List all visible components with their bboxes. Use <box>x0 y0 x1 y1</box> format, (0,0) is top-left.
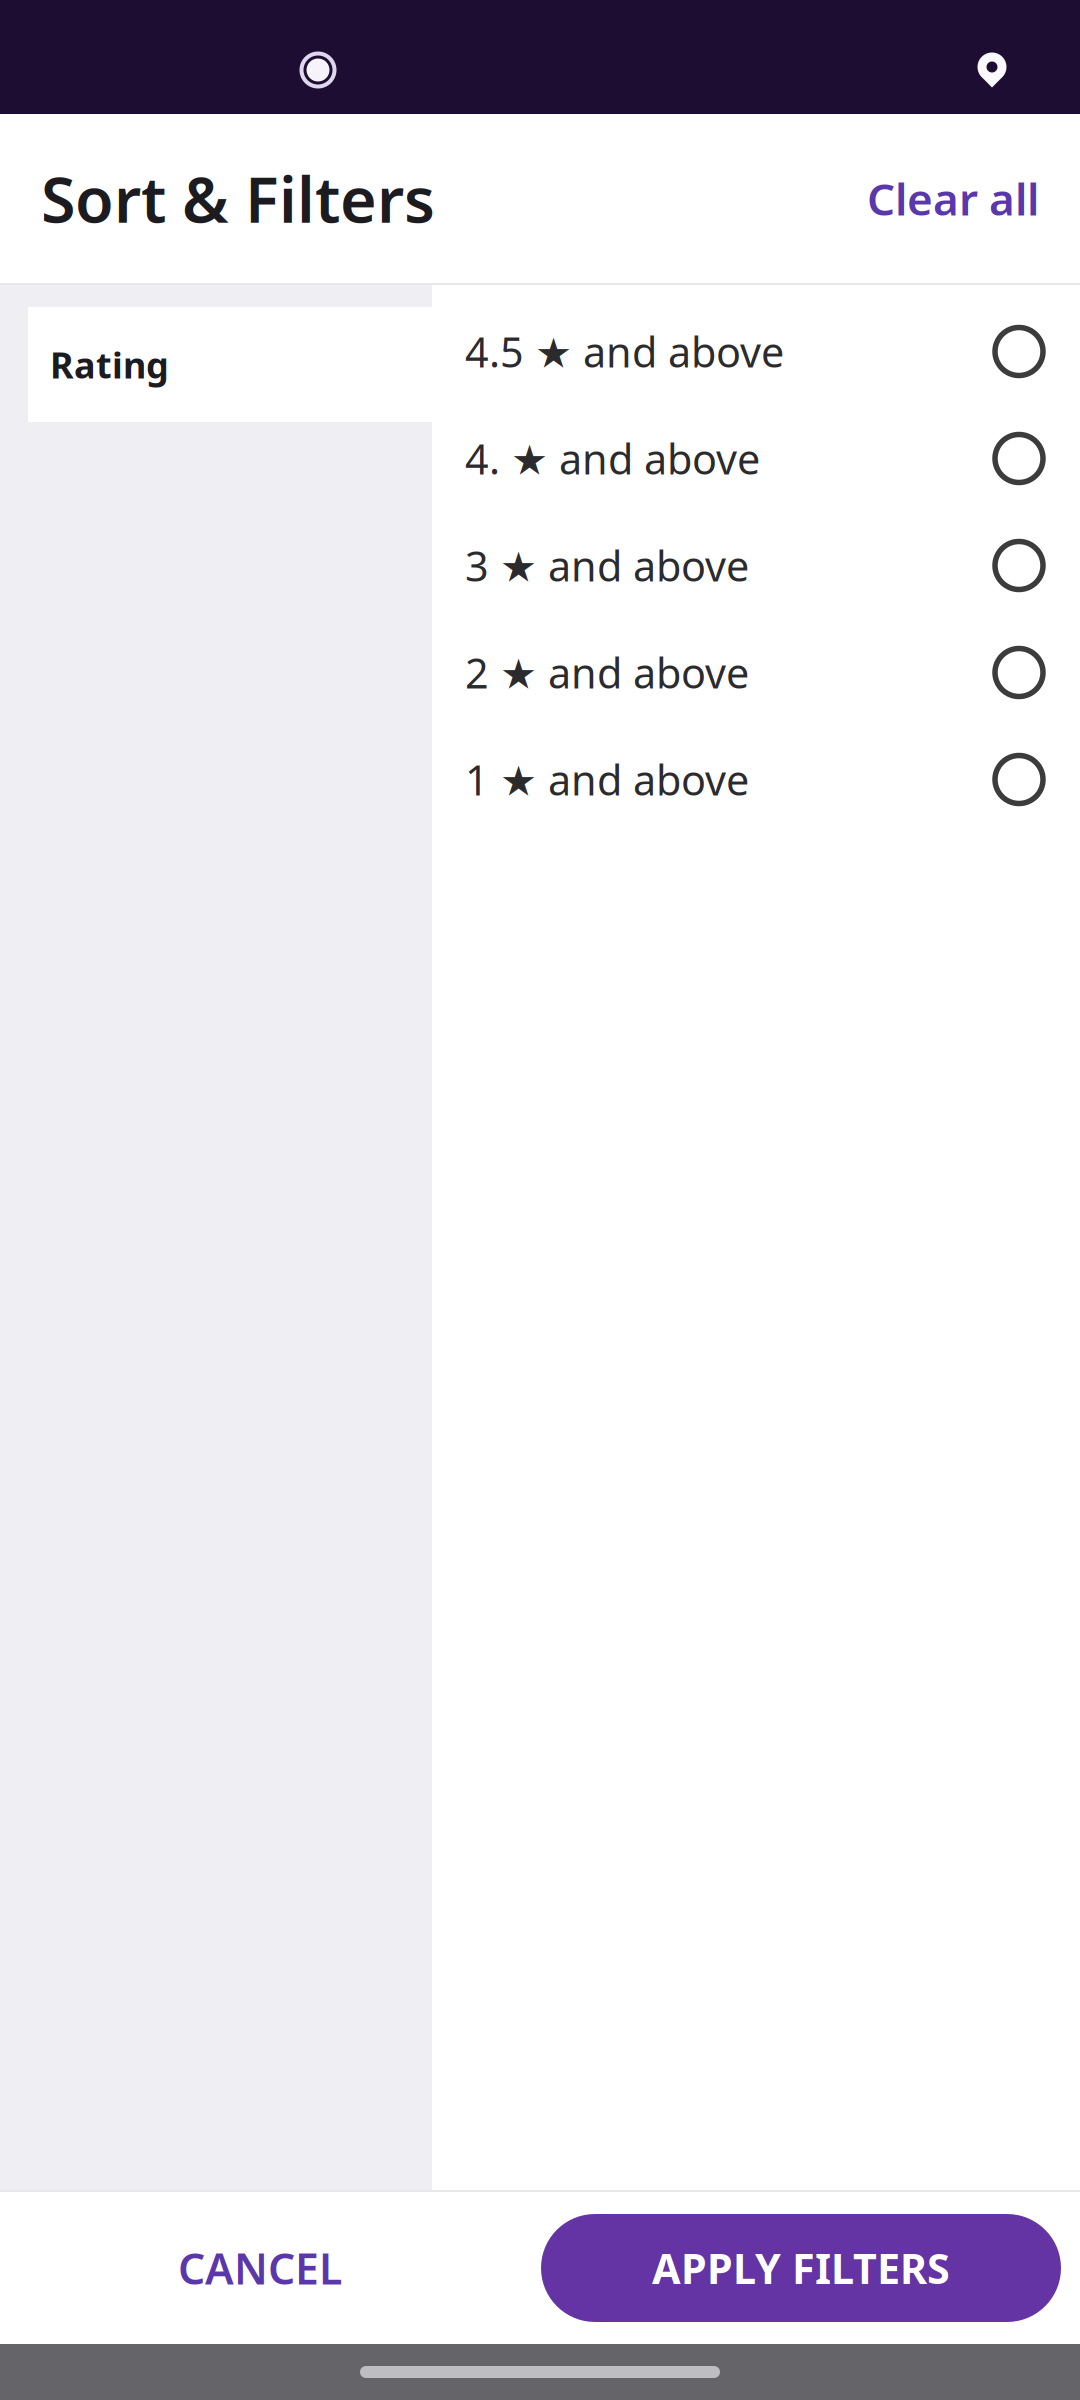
button[interactable]: 3 ★ and above <box>432 512 1080 619</box>
staticText: Sort & Filters <box>41 157 435 240</box>
button[interactable]: 4. ★ and above <box>432 405 1080 512</box>
staticText: 2 ★ and above <box>465 645 749 700</box>
staticText: Rating <box>50 341 169 388</box>
button[interactable]: Clear all <box>853 139 1053 258</box>
staticText: Clear all <box>867 169 1039 228</box>
staticText: 4.5 ★ and above <box>465 324 784 379</box>
staticText: 4. ★ and above <box>465 431 760 486</box>
staticText: CANCEL <box>178 2240 342 2296</box>
button[interactable]: Rating <box>28 307 432 422</box>
button[interactable]: CANCEL <box>149 2213 371 2323</box>
staticText: APPLY FILTERS <box>652 2241 950 2295</box>
button[interactable]: 2 ★ and above <box>432 619 1080 726</box>
button[interactable]: APPLY FILTERS <box>541 2214 1061 2322</box>
staticText: 1 ★ and above <box>465 752 749 807</box>
staticText: 3 ★ and above <box>465 538 749 593</box>
button[interactable]: 1 ★ and above <box>432 726 1080 833</box>
button[interactable]: 4.5 ★ and above <box>432 298 1080 405</box>
